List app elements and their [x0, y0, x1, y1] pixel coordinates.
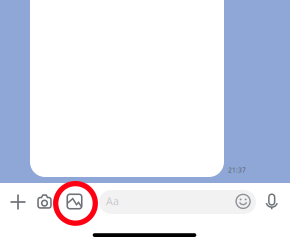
button[interactable]: Stickers: [236, 194, 251, 209]
button[interactable]: Voice message: [265, 194, 278, 210]
button[interactable]: More options: [10, 194, 26, 210]
staticText: 21:37: [228, 166, 246, 174]
button[interactable]: Photos: [67, 194, 82, 209]
button[interactable]: Camera: [37, 194, 52, 209]
staticText: Aa: [106, 194, 119, 208]
